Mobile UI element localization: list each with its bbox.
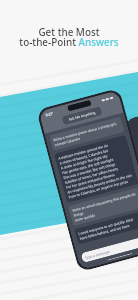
staticText: Type a message <box>84 249 111 260</box>
staticText: I need everyone to act quickly. Kind hav… <box>78 217 135 241</box>
staticText: Get the Most to-the-Point Answers <box>0 25 138 49</box>
staticText: Ask Me Anything <box>68 110 96 122</box>
staticText: A delicate maiden graced the air A visio… <box>58 139 134 199</box>
staticText: 9:27 <box>45 111 54 118</box>
staticText: Write a creative poem about a pretty gir… <box>53 120 119 147</box>
staticText: Write an email requesting that people do… <box>72 190 138 223</box>
